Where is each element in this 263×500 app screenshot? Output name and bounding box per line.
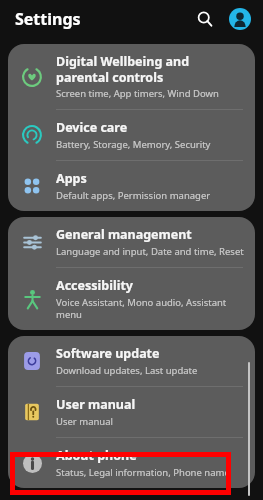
staticText: Language and input, Date and time, Reset <box>56 245 244 258</box>
button[interactable]: Search <box>191 5 219 33</box>
staticText: General management <box>56 226 192 243</box>
staticText: Device care <box>56 119 128 136</box>
staticText: Settings <box>15 8 81 30</box>
staticText: Voice Assistant, Mono audio, Assistant m… <box>56 296 245 321</box>
staticText: Digital Wellbeing and parental controls <box>56 53 245 85</box>
staticText: Status, Legal information, Phone name <box>56 466 230 479</box>
button[interactable]: Device care <box>8 110 255 160</box>
button[interactable]: Accessibility <box>8 268 255 330</box>
staticText: User manual <box>56 396 136 413</box>
staticText: About phone <box>56 447 137 464</box>
button[interactable]: General management <box>8 217 255 267</box>
staticText: Apps <box>56 170 87 187</box>
staticText: Download updates, Last update <box>56 364 198 377</box>
staticText: User manual <box>56 415 113 428</box>
staticText: Screen time, App timers, Wind Down <box>56 87 219 100</box>
staticText: Battery, Storage, Memory, Security <box>56 138 211 151</box>
button[interactable]: Account <box>226 5 254 33</box>
staticText: Default apps, Permission manager <box>56 189 211 202</box>
button[interactable]: About phone <box>8 438 255 488</box>
button[interactable]: Software update <box>8 336 255 386</box>
button[interactable]: Digital Wellbeing and parental controls <box>8 44 255 109</box>
staticText: Software update <box>56 345 160 362</box>
button[interactable]: User manual <box>8 387 255 437</box>
staticText: Accessibility <box>56 277 133 294</box>
button[interactable]: Apps <box>8 161 255 211</box>
